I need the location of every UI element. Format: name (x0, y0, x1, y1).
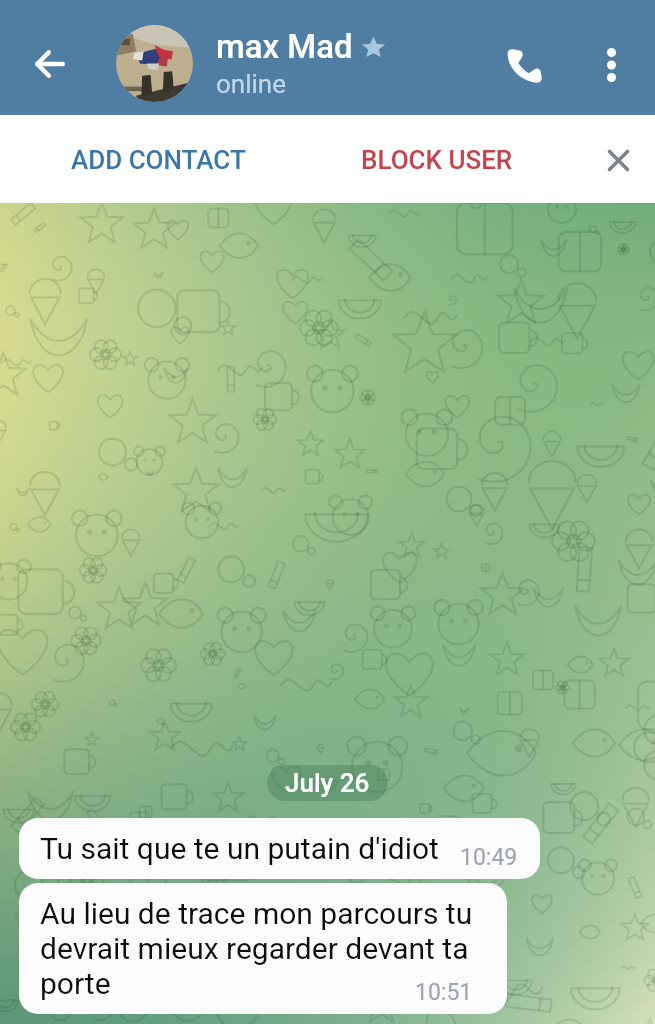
button[interactable]: BLOCK USER (337, 125, 537, 195)
button[interactable]: Close (582, 124, 654, 196)
staticText: online (216, 69, 286, 99)
staticText: Tu sait que te un putain d'idiot (40, 831, 439, 866)
button[interactable] (116, 25, 193, 102)
button[interactable]: Au lieu de trace mon parcours tu (19, 883, 507, 1014)
staticText: porte (40, 966, 111, 1001)
button[interactable]: Back (6, 20, 94, 108)
staticText: ADD CONTACT (71, 145, 246, 175)
button[interactable]: July 26 (267, 765, 388, 801)
button[interactable]: More options (567, 21, 655, 109)
staticText: BLOCK USER (361, 145, 513, 175)
staticText: 10:51 (415, 979, 473, 1006)
staticText: devrait mieux regarder devant ta (40, 931, 469, 966)
staticText: max Mad (216, 27, 353, 66)
button[interactable]: ADD CONTACT (47, 125, 270, 195)
staticText: July 26 (285, 768, 370, 798)
button[interactable]: Tu sait que te un putain d'idiot (19, 818, 540, 879)
staticText: 10:49 (460, 844, 518, 871)
button[interactable]: Call (479, 21, 567, 109)
staticText: Au lieu de trace mon parcours tu (40, 896, 473, 931)
